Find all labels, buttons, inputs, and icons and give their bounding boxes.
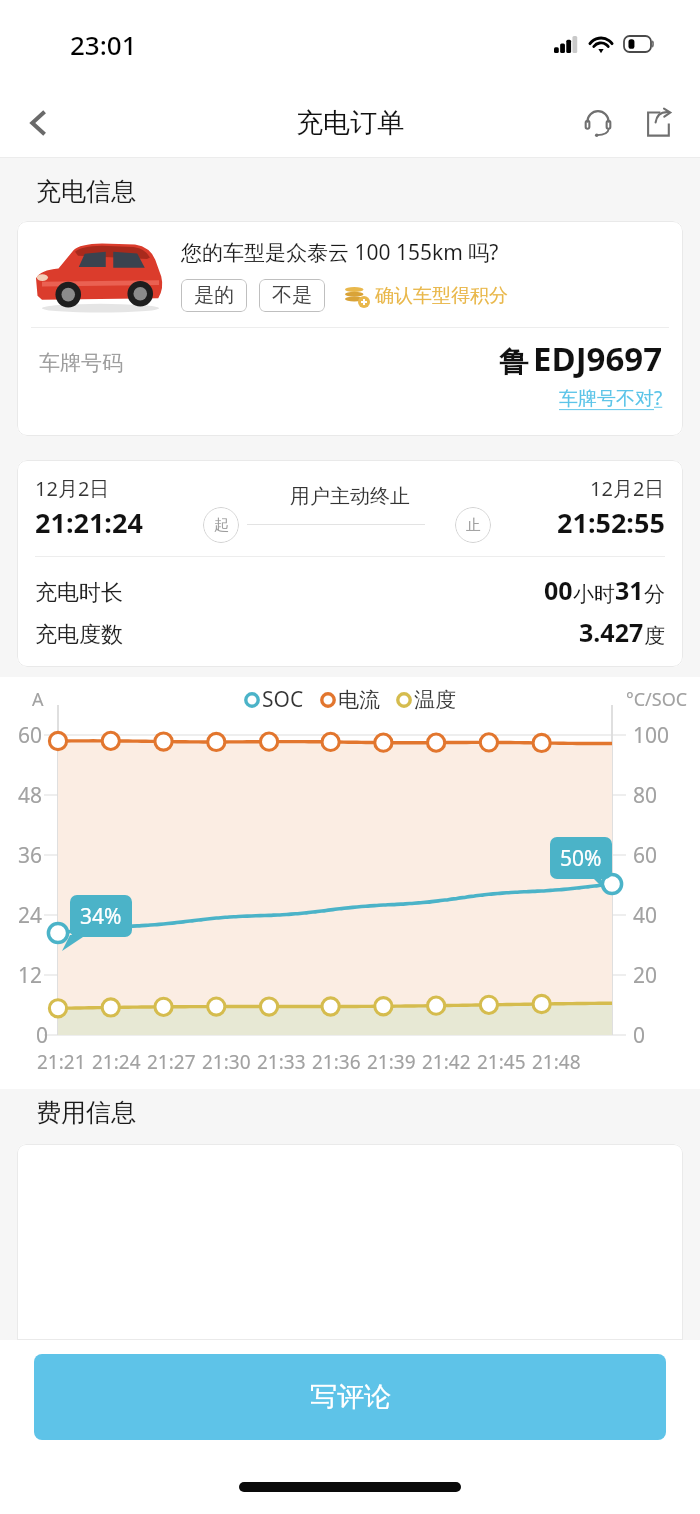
staticText: 21:21 [37,1049,86,1075]
button[interactable]: 确认车型得积分 [345,283,508,308]
button[interactable]: Back [10,94,68,152]
staticText: 度 [644,623,665,649]
staticText: 12月2日 [35,475,110,502]
staticText: 电流 [338,687,380,713]
staticText: 不是 [272,283,312,308]
staticText: 20 [633,961,658,990]
staticText: 48 [18,781,43,810]
staticText: 100 [633,721,670,750]
staticText: 21:30 [202,1049,251,1075]
staticText: 21:39 [367,1049,416,1075]
staticText: 80 [633,781,658,810]
staticText: 您的车型是众泰云 100 155km 吗? [181,238,499,267]
staticText: 21:21:24 [35,504,143,541]
staticText: 24 [18,901,43,930]
staticText: 充电时长 [35,579,123,607]
button[interactable]: Share [634,99,682,147]
staticText: 12 [18,961,43,990]
staticText: 60 [633,841,658,870]
staticText: 充电订单 [296,106,404,140]
staticText: 充电度数 [35,621,123,649]
staticText: 21:48 [532,1049,581,1075]
staticText: A [32,687,44,712]
staticText: 60 [18,721,43,750]
staticText: 21:45 [477,1049,526,1075]
staticText: 充电信息 [36,176,136,207]
staticText: 用户主动终止 [290,484,410,509]
button[interactable]: 是的 [181,279,247,312]
staticText: 止 [466,516,481,535]
button[interactable]: 写评论 [34,1354,666,1440]
staticText: 00 [544,573,573,607]
staticText: 34% [80,902,122,931]
staticText: 确认车型得积分 [375,284,508,308]
staticText: 车牌号码 [39,350,123,376]
staticText: 0 [36,1021,49,1050]
staticText: 21:24 [92,1049,141,1075]
staticText: 21:33 [257,1049,306,1075]
staticText: SOC [262,685,304,714]
staticText: 温度 [414,687,456,713]
staticText: 23:01 [70,27,137,62]
button[interactable]: 车牌号不对? [559,385,663,411]
staticText: 36 [18,841,43,870]
staticText: °C/SOC [626,687,688,712]
staticText: 31 [615,573,644,607]
staticText: EDJ9697 [533,336,663,381]
button[interactable]: 不是 [259,279,325,312]
staticText: 写评论 [310,1380,391,1414]
staticText: 分 [644,581,665,607]
staticText: 费用信息 [36,1097,136,1128]
button[interactable]: Customer service [574,99,622,147]
staticText: 起 [214,516,229,535]
staticText: 50% [560,844,602,873]
staticText: 40 [633,901,658,930]
staticText: 小时 [573,581,615,607]
staticText: 21:36 [312,1049,361,1075]
staticText: 0 [633,1021,646,1050]
staticText: 21:27 [147,1049,196,1075]
staticText: 12月2日 [590,475,665,502]
staticText: 21:42 [422,1049,471,1075]
staticText: 3.427 [579,615,644,649]
staticText: 是的 [194,283,234,308]
staticText: 鲁 [499,344,528,381]
staticText: 21:52:55 [557,504,665,541]
